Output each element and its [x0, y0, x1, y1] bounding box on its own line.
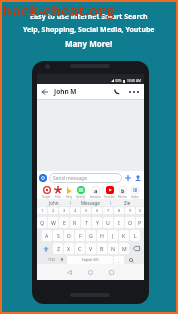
staticText: Q — [40, 219, 45, 226]
button[interactable] — [114, 89, 120, 95]
button[interactable]: M — [119, 243, 129, 254]
staticText: Zie — [124, 200, 131, 206]
staticText: 1 — [41, 208, 44, 213]
staticText: B — [100, 245, 104, 252]
staticText: Yelp — [55, 195, 61, 199]
button[interactable]: Youtube — [104, 184, 115, 199]
button[interactable]: Target — [42, 184, 51, 199]
button[interactable]: T — [81, 217, 91, 228]
button[interactable] — [88, 270, 93, 275]
staticText: G — [89, 232, 93, 239]
button[interactable]: Y — [92, 217, 102, 228]
staticText: Bing — [66, 195, 72, 199]
staticText: Giphy — [131, 195, 139, 199]
button[interactable]: John — [37, 199, 70, 206]
staticText: K — [122, 232, 126, 239]
button[interactable]: 1 — [37, 207, 47, 214]
button[interactable]: H — [97, 230, 107, 241]
button[interactable]: ?123 — [45, 256, 57, 264]
staticText: Send message — [53, 175, 88, 182]
button[interactable] — [67, 270, 72, 275]
button[interactable]: Bing — [65, 184, 73, 199]
button[interactable]: N — [108, 243, 118, 254]
staticText: M — [122, 245, 127, 252]
button[interactable]: Z — [53, 243, 63, 254]
staticText: . — [118, 257, 120, 264]
button[interactable]: 4 — [70, 207, 80, 214]
button[interactable] — [39, 243, 52, 254]
button[interactable] — [58, 256, 66, 264]
button[interactable]: O — [125, 217, 135, 228]
button[interactable]: 9 — [125, 207, 135, 214]
button[interactable] — [109, 270, 114, 275]
staticText: R — [73, 219, 77, 226]
staticText: Message — [81, 200, 100, 206]
staticText: 10:35 AM — [127, 79, 141, 83]
button[interactable]: Q — [37, 217, 47, 228]
staticText: Z — [57, 245, 60, 252]
staticText: T — [85, 219, 88, 226]
button[interactable]: A — [42, 230, 52, 241]
staticText: 5 — [85, 208, 88, 213]
button[interactable]: 2 — [48, 207, 58, 214]
button[interactable]: 6 — [92, 207, 102, 214]
button[interactable]: Giphy — [131, 184, 139, 199]
button[interactable]: F — [75, 230, 85, 241]
button[interactable]: 5 — [81, 207, 91, 214]
button[interactable]: English (US) — [67, 256, 113, 264]
button[interactable]: W — [48, 217, 58, 228]
staticText: Y — [96, 219, 99, 226]
button[interactable]: X — [64, 243, 74, 254]
button[interactable]: Send message — [49, 173, 122, 183]
button[interactable] — [130, 243, 143, 254]
staticText: X — [67, 245, 71, 252]
staticText: 6 — [96, 208, 99, 213]
button[interactable]: B — [97, 243, 107, 254]
button[interactable]: D — [64, 230, 74, 241]
button[interactable] — [125, 175, 131, 181]
button[interactable]: J — [108, 230, 118, 241]
button[interactable]: 0 — [136, 207, 144, 214]
staticText: hack-cheat.org — [2, 0, 115, 20]
button[interactable]: Spotify — [76, 184, 86, 199]
button[interactable]: I — [114, 217, 124, 228]
button[interactable]: G — [86, 230, 96, 241]
button[interactable]: Message — [71, 199, 110, 206]
staticText: Target — [42, 195, 51, 199]
button[interactable]: V — [86, 243, 96, 254]
button[interactable] — [125, 256, 137, 264]
staticText: H — [100, 232, 104, 239]
staticText: N — [111, 245, 115, 252]
staticText: b — [121, 187, 125, 194]
staticText: J — [112, 232, 114, 239]
button[interactable]: Zie — [111, 199, 144, 206]
button[interactable]: Yelp — [54, 184, 62, 199]
button[interactable]: C — [75, 243, 85, 254]
button[interactable]: 3 — [59, 207, 69, 214]
button[interactable]: a — [90, 184, 101, 199]
staticText: Youtube — [104, 195, 115, 199]
staticText: 7 — [107, 208, 110, 213]
button[interactable]: R — [70, 217, 80, 228]
button[interactable]: L — [130, 230, 140, 241]
staticText: I — [118, 219, 120, 226]
button[interactable]: . — [114, 256, 124, 264]
button[interactable] — [39, 174, 47, 182]
staticText: S — [57, 232, 60, 239]
button[interactable] — [42, 89, 48, 95]
button[interactable]: S — [53, 230, 63, 241]
staticText: A — [45, 232, 49, 239]
button[interactable]: b — [118, 184, 128, 199]
staticText: Spotify — [76, 195, 86, 199]
button[interactable]: P — [136, 217, 144, 228]
button[interactable]: 8 — [114, 207, 124, 214]
button[interactable] — [135, 175, 141, 181]
button[interactable]: E — [59, 217, 69, 228]
button[interactable]: U — [103, 217, 113, 228]
staticText: V — [89, 245, 93, 252]
button[interactable]: 7 — [103, 207, 113, 214]
staticText: E — [63, 219, 66, 226]
button[interactable] — [129, 91, 139, 93]
button[interactable]: K — [119, 230, 129, 241]
staticText: Easy to use internet Smart Search — [30, 12, 148, 22]
